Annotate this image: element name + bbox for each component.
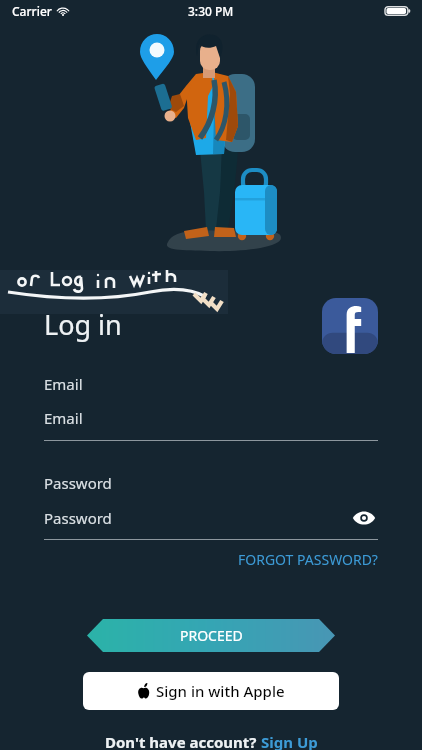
staticText: Carrier — [12, 3, 52, 19]
staticText: 3:30 PM — [188, 3, 234, 19]
staticText: FORGOT PASSWORD? — [238, 550, 378, 569]
staticText: Log in — [44, 306, 122, 343]
staticText: Sign in with Apple — [156, 681, 285, 701]
button[interactable]: Password — [44, 508, 350, 528]
staticText: Password — [44, 508, 112, 528]
staticText: Email — [44, 374, 83, 394]
button[interactable]: Sign in with Apple — [83, 672, 339, 710]
button[interactable]: Sign Up — [261, 732, 318, 750]
staticText: Email — [44, 408, 83, 428]
button[interactable]: Email — [44, 408, 378, 428]
button[interactable]: Show password — [350, 507, 378, 529]
staticText: PROCEED — [180, 626, 243, 645]
staticText: Sign Up — [261, 732, 318, 750]
button[interactable]: FORGOT PASSWORD? — [238, 550, 378, 569]
staticText: Password — [44, 473, 112, 493]
button[interactable]: PROCEED — [87, 619, 335, 652]
button[interactable]: Log in with Facebook — [322, 298, 378, 354]
staticText: Don't have account? — [105, 732, 261, 750]
